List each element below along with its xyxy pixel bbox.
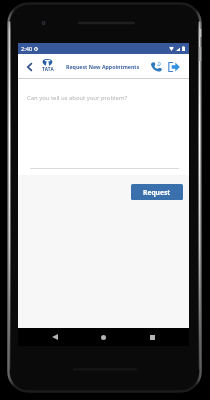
button[interactable]: Back	[46, 328, 63, 346]
button[interactable]: Home	[95, 328, 112, 346]
staticText: Request New Appointments	[66, 63, 140, 70]
button[interactable]: Logout	[165, 56, 182, 77]
staticText: Can you tell us about your problem?	[27, 94, 127, 102]
button[interactable]: Call	[148, 56, 165, 77]
staticText: Request	[143, 188, 171, 197]
staticText: 2:40	[21, 45, 33, 53]
button[interactable]: Request	[131, 184, 183, 200]
button[interactable]: Recents	[144, 328, 161, 346]
staticText: TATA	[42, 66, 54, 72]
button[interactable]: Back	[21, 54, 38, 79]
